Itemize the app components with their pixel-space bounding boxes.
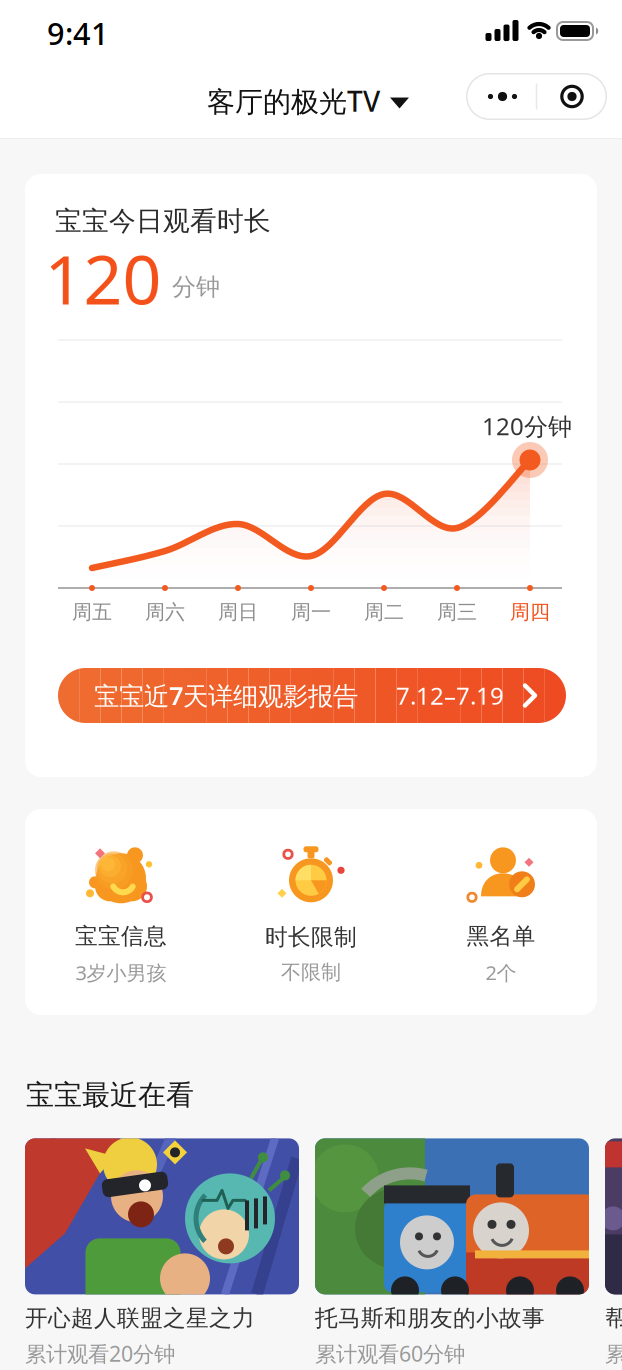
staticText: 累计观看10分钟 xyxy=(605,1339,622,1367)
staticText: 3岁小男孩 xyxy=(75,959,166,986)
button[interactable]: 托马斯和朋友的小故事 xyxy=(315,1138,589,1368)
staticText: 120 xyxy=(44,233,161,323)
button[interactable]: 时长限制 xyxy=(216,839,406,985)
button[interactable]: 更多 xyxy=(478,84,526,108)
staticText: 7.12–7.19 xyxy=(396,680,504,711)
button[interactable]: 客厅的极光TV xyxy=(207,82,409,120)
staticText: 周一 xyxy=(291,600,331,624)
staticText: 累计观看20分钟 xyxy=(25,1339,175,1367)
staticText: 分钟 xyxy=(172,272,220,302)
staticText: 周五 xyxy=(72,600,112,624)
staticText: 2个 xyxy=(485,959,516,986)
staticText: 开心超人联盟之星之力 xyxy=(25,1304,255,1332)
staticText: 周日 xyxy=(218,600,258,624)
staticText: 宝宝信息 xyxy=(75,922,167,950)
button[interactable]: 宝宝信息 xyxy=(26,838,216,986)
button[interactable]: 黑名单 xyxy=(406,838,596,986)
staticText: 120分钟 xyxy=(482,410,572,442)
staticText: 宝宝近7天详细观影报告 xyxy=(94,679,358,712)
staticText: 客厅的极光TV xyxy=(207,82,380,120)
button[interactable]: 开心超人联盟之星之力 xyxy=(25,1138,299,1368)
staticText: 宝宝最近在看 xyxy=(26,1078,194,1112)
button[interactable]: 帮帮龙出动之恐龙探险 xyxy=(605,1138,622,1368)
staticText: 周三 xyxy=(437,600,477,624)
staticText: 9:41 xyxy=(47,13,109,53)
staticText: 黑名单 xyxy=(466,922,535,950)
staticText: 时长限制 xyxy=(265,923,357,951)
staticText: 帮帮龙出动之恐龙探险 xyxy=(605,1304,622,1332)
staticText: 托马斯和朋友的小故事 xyxy=(315,1304,545,1332)
staticText: 周二 xyxy=(364,600,404,624)
staticText: 宝宝今日观看时长 xyxy=(55,205,271,237)
staticText: 周六 xyxy=(145,600,185,624)
staticText: 周四 xyxy=(510,600,550,624)
staticText: 不限制 xyxy=(281,960,341,985)
button[interactable]: 关闭 xyxy=(559,83,585,109)
staticText: 累计观看60分钟 xyxy=(315,1339,465,1367)
button[interactable]: 宝宝近7天详细观影报告 xyxy=(58,668,566,723)
